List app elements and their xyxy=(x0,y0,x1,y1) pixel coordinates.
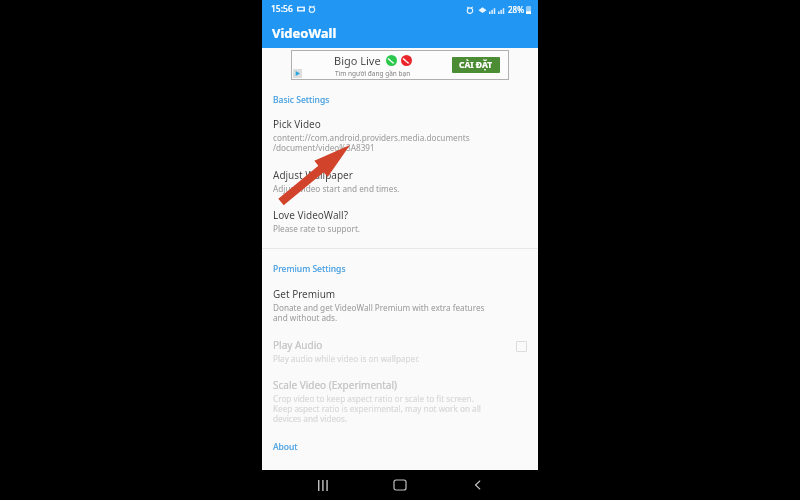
staticText: 15:56 xyxy=(271,3,293,15)
staticText: Play audio while video is on wallpaper. xyxy=(273,353,420,364)
staticText: 28% xyxy=(508,4,524,15)
staticText: content://com.android.providers.media.do… xyxy=(273,132,470,154)
button[interactable]: Ad xyxy=(291,50,509,80)
staticText: Love VideoWall? xyxy=(273,208,349,222)
staticText: Get Premium xyxy=(273,287,336,301)
staticText: Basic Settings xyxy=(273,94,330,106)
staticText: Pick Video xyxy=(273,117,321,131)
other: Ad xyxy=(293,69,302,78)
staticText: About xyxy=(273,441,298,453)
staticText: Scale Video (Experimental) xyxy=(273,378,398,392)
staticText: Bigo Live xyxy=(334,53,381,68)
button[interactable]: Home xyxy=(383,470,417,500)
staticText: Please rate to support. xyxy=(273,223,361,234)
staticText: Crop video to keep aspect ratio or scale… xyxy=(273,393,481,425)
button[interactable]: CÀI ĐẶT xyxy=(452,57,500,73)
button[interactable]: Play Audio xyxy=(262,338,538,364)
button[interactable]: Back xyxy=(461,470,495,500)
staticText: Donate and get VideoWall Premium with ex… xyxy=(273,302,485,324)
button[interactable]: Recent apps xyxy=(306,470,340,500)
staticText: Play Audio xyxy=(273,338,323,352)
button[interactable]: Pick Video xyxy=(262,117,538,154)
staticText: Premium Settings xyxy=(273,263,346,275)
button[interactable]: Get Premium xyxy=(262,287,538,324)
staticText: Adjust Wallpaper xyxy=(273,168,353,182)
staticText: Tìm người đang gần bạn xyxy=(335,69,411,78)
staticText: CÀI ĐẶT xyxy=(459,59,493,71)
button[interactable]: Scale Video (Experimental) xyxy=(262,378,538,425)
button[interactable]: Adjust Wallpaper xyxy=(262,168,538,194)
staticText: Adjust video start and end times. xyxy=(273,183,400,194)
button[interactable]: Love VideoWall? xyxy=(262,208,538,234)
staticText: VideoWall xyxy=(272,24,337,42)
